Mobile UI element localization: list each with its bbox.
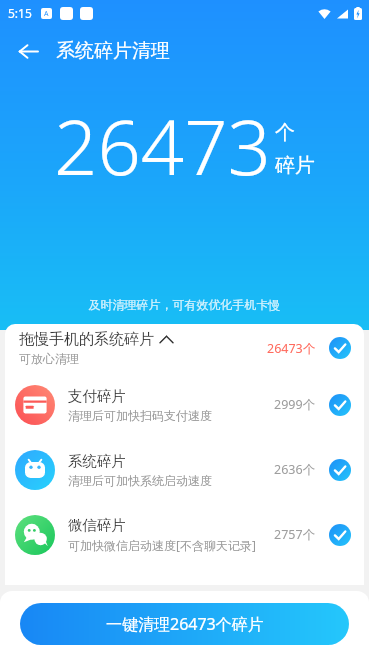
button[interactable]: 系统碎片 [5,437,364,502]
staticText: 系统碎片 [68,452,126,470]
staticText: 一键清理26473个碎片 [106,613,264,635]
staticText: 26473 [54,94,271,198]
button[interactable]: 拖慢手机的系统碎片 [5,324,364,372]
button[interactable]: 支付碎片 [5,372,364,437]
staticText: A [44,9,49,19]
button[interactable]: Selected [329,337,351,359]
button[interactable]: Selected [329,459,351,481]
staticText: 可放心清理 [19,351,79,366]
staticText: 5:15 [8,5,32,21]
staticText: 系统碎片清理 [56,39,170,63]
staticText: 碎片 [275,153,315,178]
staticText: 2636个 [274,461,316,478]
button[interactable]: Selected [329,524,351,546]
staticText: 及时清理碎片，可有效优化手机卡慢 [0,297,369,312]
button[interactable]: 微信碎片 [5,502,364,567]
staticText: 26473个 [267,340,316,357]
staticText: 清理后可加快扫码支付速度 [68,408,212,423]
staticText: 个 [275,120,295,145]
staticText: 2757个 [274,526,316,543]
button[interactable]: Selected [329,394,351,416]
staticText: 可加快微信启动速度[不含聊天记录] [68,537,256,553]
staticText: 2999个 [274,396,316,413]
button[interactable]: Back [6,29,50,73]
staticText: 清理后可加快系统启动速度 [68,473,212,488]
staticText: 支付碎片 [68,387,126,405]
staticText: 拖慢手机的系统碎片 [19,330,154,349]
button[interactable]: 一键清理26473个碎片 [20,603,349,645]
staticText: 微信碎片 [68,516,126,534]
